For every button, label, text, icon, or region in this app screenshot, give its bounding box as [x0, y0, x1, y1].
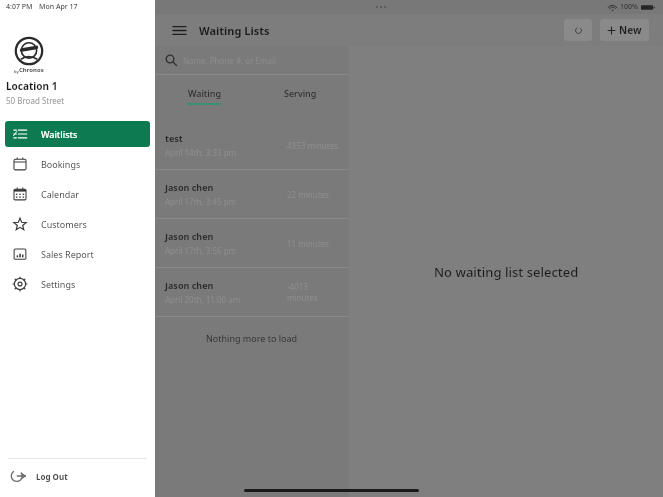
- staticText: Sales Report: [41, 248, 94, 260]
- button[interactable]: Log Out: [0, 459, 155, 493]
- staticText: April 14th, 3:33 pm: [165, 147, 237, 158]
- button[interactable]: Jason chen: [155, 268, 349, 317]
- staticText: April 17th, 3:45 pm: [165, 196, 237, 207]
- staticText: 100%: [620, 2, 638, 12]
- staticText: 22 minutes: [287, 189, 329, 200]
- staticText: New: [619, 23, 642, 37]
- staticText: Waiting Lists: [199, 23, 270, 38]
- staticText: Jason chen: [165, 279, 214, 291]
- button[interactable]: Serving: [252, 75, 349, 109]
- button[interactable]: Refresh: [564, 19, 592, 41]
- button[interactable]: Jason chen: [155, 170, 349, 219]
- staticText: -4013: [287, 281, 308, 292]
- staticText: Name, Phone #, or Email: [183, 55, 277, 66]
- button[interactable]: test: [155, 121, 349, 170]
- staticText: Waiting: [188, 87, 221, 99]
- staticText: Serving: [284, 87, 317, 99]
- staticText: Jason chen: [165, 181, 214, 193]
- button[interactable]: Customers: [5, 211, 150, 237]
- staticText: April 20th, 11:00 am: [165, 294, 241, 305]
- button[interactable]: Sales Report: [5, 241, 150, 267]
- button[interactable]: New: [600, 19, 649, 41]
- staticText: Log Out: [36, 471, 68, 482]
- button[interactable]: Calendar: [5, 181, 150, 207]
- staticText: Waitlists: [41, 128, 78, 140]
- staticText: 11 minutes: [287, 238, 329, 249]
- button[interactable]: Jason chen: [155, 219, 349, 268]
- button[interactable]: Settings: [5, 271, 150, 297]
- staticText: Settings: [41, 278, 76, 290]
- staticText: by: [14, 69, 19, 74]
- staticText: No waiting list selected: [434, 263, 579, 281]
- button[interactable]: Waiting: [155, 75, 252, 109]
- button[interactable]: Menu: [167, 18, 191, 42]
- staticText: Location 1: [6, 79, 58, 93]
- button[interactable]: Name, Phone #, or Email: [155, 46, 349, 74]
- button[interactable]: Bookings: [5, 151, 150, 177]
- staticText: April 17th, 3:56 pm: [165, 245, 237, 256]
- staticText: 4353 minutes: [287, 140, 339, 151]
- staticText: Jason chen: [165, 230, 214, 242]
- staticText: Bookings: [41, 158, 81, 170]
- button[interactable]: Waitlists: [5, 121, 150, 147]
- staticText: Mon Apr 17: [39, 2, 78, 12]
- staticText: Calendar: [41, 188, 79, 200]
- staticText: test: [165, 132, 183, 144]
- staticText: Chronos: [19, 66, 44, 74]
- staticText: 4:07 PM: [6, 2, 33, 12]
- staticText: Customers: [41, 218, 87, 230]
- staticText: Nothing more to load: [206, 332, 298, 344]
- staticText: 50 Broad Street: [6, 95, 65, 106]
- staticText: minutes: [287, 292, 318, 303]
